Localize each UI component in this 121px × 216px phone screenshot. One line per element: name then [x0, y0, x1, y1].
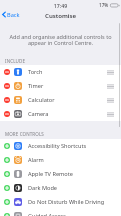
- other: Add Guided Access: [4, 213, 10, 216]
- staticText: INCLUDE: [5, 58, 26, 64]
- button[interactable]: Remove Calculator: [0, 93, 121, 107]
- other: Remove Camera: [4, 111, 10, 117]
- staticText: Apple TV Remote: [28, 170, 73, 178]
- button[interactable]: Add Guided Access: [0, 209, 121, 216]
- other: Remove Torch: [4, 69, 10, 75]
- staticText: 17%: [99, 2, 109, 8]
- staticText: Guided Access: [28, 212, 66, 216]
- staticText: MORE CONTROLS: [5, 131, 44, 137]
- button[interactable]: Remove Torch: [0, 65, 121, 79]
- other: Add Accessibility Shortcuts: [4, 143, 10, 149]
- button[interactable]: Add Accessibility Shortcuts: [0, 139, 121, 153]
- other: Add Alarm: [4, 157, 10, 163]
- button[interactable]: Add Apple TV Remote: [0, 167, 121, 181]
- staticText: Do Not Disturb While Driving: [28, 198, 105, 206]
- staticText: Back: [7, 11, 20, 18]
- other: Add Dark Mode: [4, 185, 10, 191]
- button[interactable]: Add Do Not Disturb While Driving: [0, 195, 121, 209]
- button[interactable]: Add Alarm: [0, 153, 121, 167]
- other: Reorder Calculator: [107, 98, 114, 103]
- staticText: Timer: [28, 82, 44, 90]
- staticText: Customise: [45, 11, 77, 19]
- other: Reorder Torch: [107, 70, 114, 75]
- other: Reorder Camera: [107, 112, 114, 117]
- staticText: Calculator: [28, 96, 55, 104]
- other: Remove Calculator: [4, 97, 10, 103]
- staticText: Torch: [28, 68, 43, 76]
- staticText: Alarm: [28, 156, 44, 164]
- staticText: Dark Mode: [28, 184, 58, 192]
- staticText: Accessibility Shortcuts: [28, 142, 87, 150]
- button[interactable]: Add Dark Mode: [0, 181, 121, 195]
- staticText: Camera: [28, 110, 49, 118]
- button[interactable]: Remove Timer: [0, 79, 121, 93]
- button[interactable]: Back: [0, 10, 24, 19]
- other: Add Do Not Disturb While Driving: [4, 199, 10, 205]
- staticText: Add and organise additional controls to …: [6, 33, 115, 47]
- other: Remove Timer: [4, 83, 10, 89]
- other: Reorder Timer: [107, 84, 114, 89]
- button[interactable]: Remove Camera: [0, 107, 121, 121]
- other: Add Apple TV Remote: [4, 171, 10, 177]
- staticText: 17:49: [0, 2, 121, 9]
